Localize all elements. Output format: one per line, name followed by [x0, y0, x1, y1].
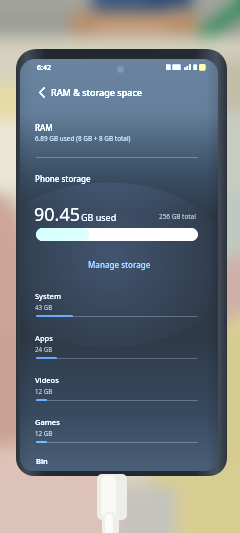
staticText: Apps: [35, 333, 53, 343]
button[interactable]: [20, 367, 218, 409]
button[interactable]: [20, 283, 218, 325]
button[interactable]: [20, 409, 218, 451]
staticText: 256 GB total: [159, 212, 196, 221]
staticText: 12 GB: [35, 387, 53, 395]
staticText: Phone storage: [35, 173, 91, 184]
staticText: 43 GB: [35, 303, 53, 311]
staticText: 6.89 GB used (8 GB + 8 GB total): [35, 134, 131, 143]
staticText: 24 GB: [35, 345, 53, 353]
button[interactable]: [20, 81, 218, 103]
staticText: System: [35, 291, 62, 301]
staticText: RAM & storage space: [51, 86, 143, 98]
button[interactable]: [20, 453, 218, 471]
staticText: 12 GB: [35, 429, 53, 437]
staticText: RAM: [35, 122, 53, 133]
staticText: Videos: [35, 375, 59, 385]
button[interactable]: Back: [34, 84, 50, 100]
staticText: 90.45: [34, 202, 81, 227]
staticText: Bin: [36, 456, 48, 466]
staticText: 6:42: [37, 63, 51, 73]
button[interactable]: [20, 325, 218, 367]
staticText: GB used: [81, 211, 117, 223]
button[interactable]: Manage storage: [82, 255, 157, 274]
staticText: Games: [35, 417, 60, 427]
staticText: Manage storage: [88, 259, 151, 270]
